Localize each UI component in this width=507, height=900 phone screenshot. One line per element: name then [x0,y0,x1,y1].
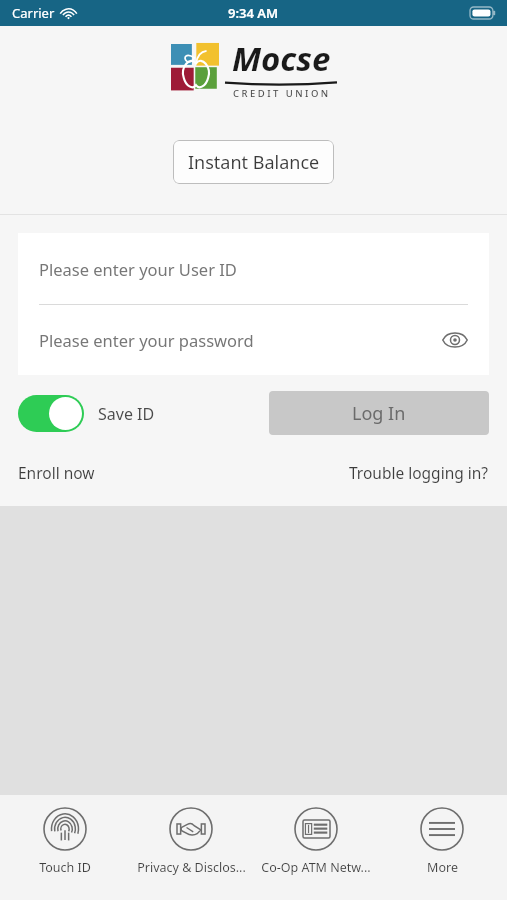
staticText: Instant Balance [188,150,320,175]
button[interactable]: Please enter your User ID [18,233,489,304]
button[interactable]: More [382,795,502,900]
button[interactable]: Show password [437,322,473,358]
button[interactable]: Please enter your password [18,305,489,375]
staticText: Log In [352,401,406,426]
staticText: Please enter your password [39,329,254,351]
staticText: Mocse [232,36,331,81]
button[interactable] [18,395,84,432]
button[interactable]: Instant Balance [173,140,334,184]
button[interactable]: Log In [269,391,489,435]
staticText: Enroll now [18,462,95,483]
staticText: C R E D I T U N I O N [233,87,329,100]
staticText: Please enter your User ID [39,258,237,280]
button[interactable]: Co-Op ATM Netw... [256,795,376,900]
staticText: Co-Op ATM Netw... [261,859,371,876]
button[interactable]: Save ID [18,395,155,432]
staticText: More [427,859,458,876]
staticText: Save ID [98,403,155,425]
button[interactable]: Trouble logging in? [349,462,489,483]
staticText: Touch ID [39,859,91,876]
button[interactable]: Enroll now [18,462,95,483]
button[interactable]: Privacy & Disclos... [131,795,251,900]
staticText: 9:34 AM [228,4,279,22]
staticText: Carrier [12,4,55,22]
button[interactable]: Touch ID [5,795,125,900]
staticText: Privacy & Disclos... [137,859,246,876]
staticText: Trouble logging in? [349,462,489,483]
